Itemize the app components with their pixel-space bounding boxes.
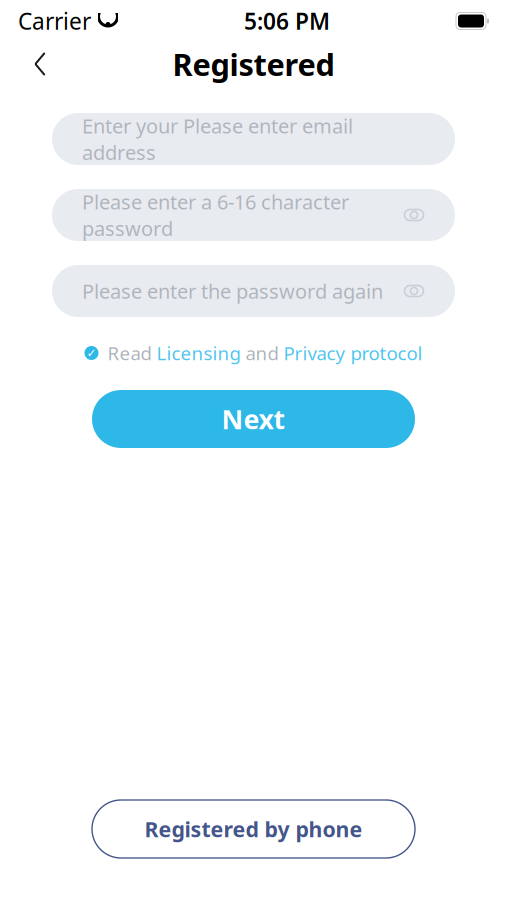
staticText: Registered (172, 44, 334, 84)
staticText: Licensing (156, 341, 240, 365)
staticText: Registered by phone (144, 815, 362, 843)
button[interactable]: Next (92, 390, 415, 448)
button[interactable]: Enter your Please enter email address (52, 113, 455, 165)
button[interactable]: ✓ (80, 339, 426, 367)
staticText: 5:06 PM (244, 6, 330, 36)
staticText: Privacy protocol (283, 341, 422, 365)
staticText: Next (221, 401, 285, 437)
button[interactable]: Registered by phone (92, 800, 415, 858)
staticText: Carrier (18, 6, 91, 36)
button[interactable]: Please enter a 6-16 character password (52, 189, 455, 241)
staticText: Enter your Please enter email address (82, 112, 353, 165)
staticText: and (240, 341, 283, 365)
staticText: ✓ (86, 346, 96, 360)
staticText: Please enter a 6-16 character password (82, 188, 349, 241)
button[interactable]: Back (18, 42, 62, 86)
staticText: Read (107, 341, 156, 365)
button[interactable]: Please enter the password again (52, 265, 455, 317)
staticText: Please enter the password again (82, 278, 383, 304)
